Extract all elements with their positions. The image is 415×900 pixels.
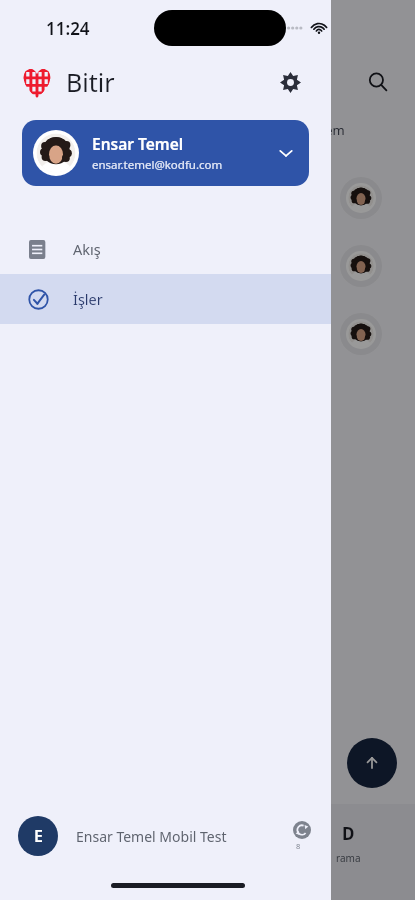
button[interactable]	[0, 164, 415, 232]
button[interactable]	[0, 0, 415, 900]
button[interactable]: İşler	[0, 274, 331, 324]
staticText: Bitir	[66, 65, 115, 99]
button[interactable]: E	[0, 807, 331, 865]
button[interactable]: Settings	[271, 63, 309, 101]
staticText: İşler	[73, 289, 103, 309]
staticText: rama	[336, 851, 361, 865]
button[interactable]: Akış	[0, 224, 331, 274]
button[interactable]: Ensar Temel	[22, 120, 309, 186]
staticText: Ensar Temel Mobil Test	[76, 827, 289, 846]
staticText: Ensar Temel	[92, 133, 184, 154]
staticText: E	[34, 825, 43, 847]
button[interactable]: Scroll to top	[347, 738, 397, 788]
staticText: Akış	[73, 239, 101, 259]
staticText: ensar.temel@kodfu.com	[92, 157, 223, 173]
staticText: 11:24	[46, 17, 90, 40]
staticText: Önem	[307, 121, 345, 139]
button[interactable]	[0, 232, 415, 300]
staticText: 8	[296, 841, 308, 851]
button[interactable]: D	[330, 816, 367, 871]
button[interactable]	[0, 300, 415, 368]
staticText: D	[342, 822, 355, 845]
button[interactable]: Search	[359, 63, 397, 101]
button[interactable]: Sync	[289, 817, 315, 855]
